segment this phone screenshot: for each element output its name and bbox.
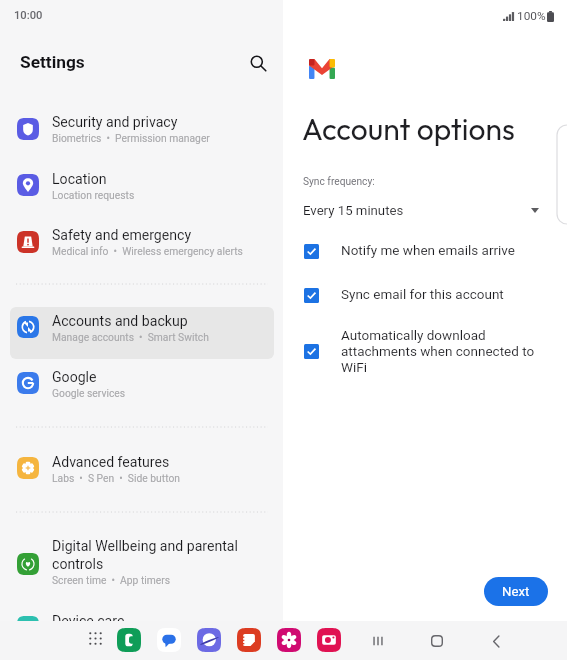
button[interactable]: Home xyxy=(423,627,451,655)
button[interactable]: Internet xyxy=(197,628,221,652)
staticText: Sync email for this account xyxy=(341,286,541,302)
staticText: Automatically download attachments when … xyxy=(341,327,561,375)
button[interactable]: Search xyxy=(245,50,272,77)
staticText: 10:00 xyxy=(14,9,43,22)
button[interactable]: Gallery xyxy=(277,628,301,652)
staticText: Notify me when emails arrive xyxy=(341,242,541,258)
button[interactable]: Every 15 minutes xyxy=(303,199,543,221)
staticText: Screen time • App timers xyxy=(52,574,171,586)
button[interactable] xyxy=(10,109,274,161)
staticText: Security and privacy xyxy=(52,114,178,131)
button[interactable] xyxy=(10,222,274,274)
button[interactable] xyxy=(10,165,274,217)
staticText: Account options xyxy=(302,110,515,148)
button[interactable]: All apps xyxy=(83,626,107,650)
staticText: Google xyxy=(52,369,97,386)
staticText: 100% xyxy=(517,9,546,23)
staticText: Advanced features xyxy=(52,454,170,471)
staticText: Safety and emergency xyxy=(52,227,192,244)
staticText: Accounts and backup xyxy=(52,313,188,330)
staticText: Digital Wellbeing and parental controls xyxy=(52,538,252,573)
button[interactable]: Phone xyxy=(117,628,141,652)
button[interactable] xyxy=(10,607,274,659)
button[interactable]: Checkbox, checked xyxy=(304,288,319,303)
button[interactable]: Checkbox, checked xyxy=(304,344,319,359)
staticText: Every 15 minutes xyxy=(303,203,404,218)
staticText: Device care xyxy=(52,613,125,630)
button[interactable] xyxy=(10,534,274,596)
staticText: Sync frequency: xyxy=(303,176,375,188)
staticText: Location requests xyxy=(52,189,135,201)
staticText: Settings xyxy=(20,52,85,72)
staticText: Google services xyxy=(52,387,126,399)
staticText: Labs • S Pen • Side button xyxy=(52,472,180,484)
other: Gmail xyxy=(309,59,335,79)
button[interactable]: Recents xyxy=(364,627,392,655)
button[interactable]: Checkbox, checked xyxy=(304,244,319,259)
button[interactable]: Camera xyxy=(317,628,341,652)
button[interactable] xyxy=(10,363,274,415)
button[interactable]: Messages xyxy=(157,628,181,652)
staticText: Biometrics • Permission manager xyxy=(52,132,210,144)
staticText: Manage accounts • Smart Switch xyxy=(52,331,209,343)
button[interactable] xyxy=(10,307,274,359)
staticText: Medical info • Wireless emergency alerts xyxy=(52,245,243,257)
button[interactable]: Next xyxy=(484,577,548,606)
button[interactable] xyxy=(10,448,274,500)
button[interactable]: Back xyxy=(482,627,510,655)
staticText: Location xyxy=(52,171,107,188)
staticText: Next xyxy=(502,584,530,599)
button[interactable]: Notes xyxy=(237,628,261,652)
